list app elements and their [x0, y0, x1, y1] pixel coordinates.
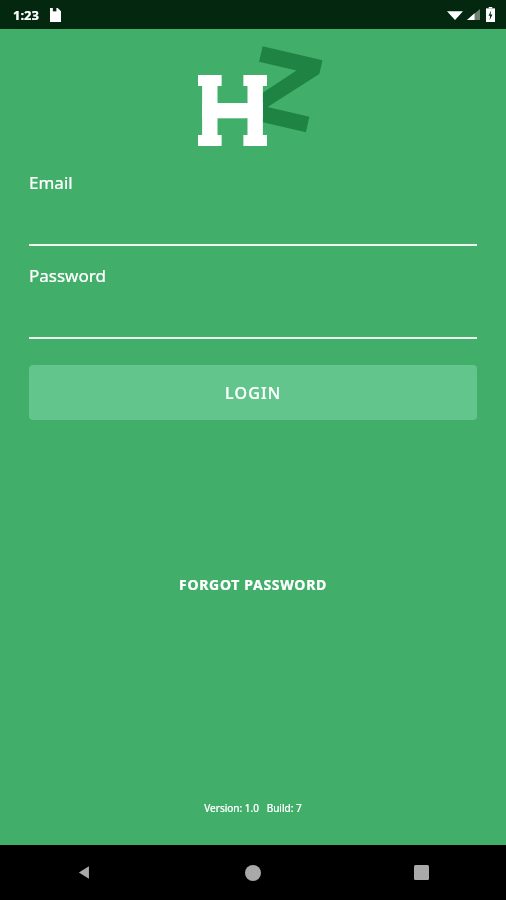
staticText: FORGOT PASSWORD — [179, 575, 327, 594]
staticText: Version: 1.0 Build: 7 — [204, 801, 302, 815]
staticText: Email — [29, 171, 73, 194]
button[interactable]: Back — [0, 845, 168, 900]
staticText: Password — [29, 264, 106, 287]
button[interactable]: FORGOT PASSWORD — [167, 568, 339, 601]
button[interactable]: Recent apps — [337, 845, 506, 900]
staticText: LOGIN — [225, 382, 282, 404]
button[interactable]: Home — [168, 845, 337, 900]
button[interactable]: LOGIN — [29, 365, 477, 420]
staticText: 1:23 — [13, 6, 39, 24]
